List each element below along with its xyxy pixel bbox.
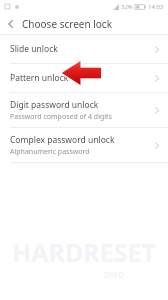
button[interactable]: Complex password unlock: [0, 128, 168, 162]
staticText: 14:03: [148, 3, 164, 11]
staticText: Alphanumeric password: [10, 147, 90, 157]
staticText: 32%: [121, 3, 133, 11]
staticText: Choose screen lock: [22, 17, 112, 31]
staticText: Slide unlock: [10, 43, 58, 55]
button[interactable]: Slide unlock: [0, 35, 168, 63]
button[interactable]: Pattern unlock: [0, 64, 168, 92]
button[interactable]: Digit password unlock: [0, 93, 168, 127]
staticText: INFO: [104, 269, 125, 280]
button[interactable]: Back: [0, 13, 22, 34]
staticText: Digit password unlock: [10, 99, 99, 111]
staticText: HARDRESET: [12, 235, 156, 269]
staticText: Complex password unlock: [10, 134, 115, 146]
staticText: Pattern unlock: [10, 72, 69, 84]
staticText: Password composed of 4 digits: [10, 112, 112, 122]
